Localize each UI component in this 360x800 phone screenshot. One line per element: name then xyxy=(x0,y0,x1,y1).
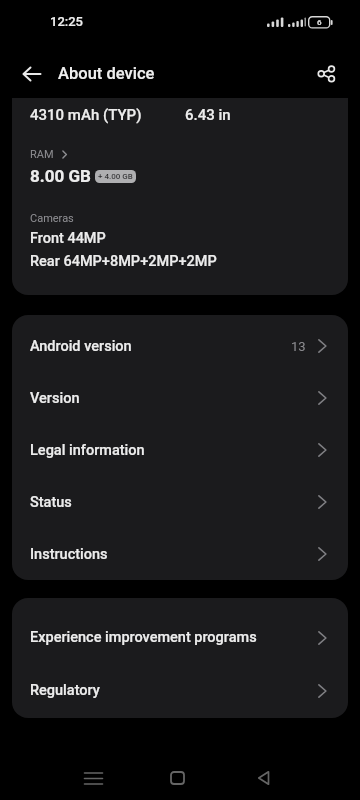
staticText: About device xyxy=(58,64,155,83)
button[interactable] xyxy=(308,58,348,86)
staticText: Experience improvement programs xyxy=(30,629,257,646)
staticText: Cameras xyxy=(30,212,74,225)
staticText: 13 xyxy=(291,339,306,354)
button[interactable]: Version xyxy=(12,372,348,424)
button[interactable] xyxy=(71,758,115,798)
staticText: 6 xyxy=(317,18,322,27)
staticText: 4310 mAh (TYP) xyxy=(30,106,142,124)
button[interactable]: Experience improvement programs xyxy=(12,611,348,664)
button[interactable]: RAM xyxy=(30,148,68,161)
button[interactable]: Legal information xyxy=(12,424,348,476)
staticText: + 4.00 GB xyxy=(98,172,133,181)
staticText: Version xyxy=(30,390,80,407)
staticText: Legal information xyxy=(30,442,145,459)
button[interactable] xyxy=(12,62,52,86)
button[interactable]: Regulatory xyxy=(12,664,348,717)
staticText: 6.43 in xyxy=(185,106,231,124)
staticText: RAM xyxy=(30,148,54,161)
button[interactable]: Instructions xyxy=(12,528,348,580)
staticText: Rear 64MP+8MP+2MP+2MP xyxy=(30,253,217,270)
button[interactable]: Android version xyxy=(12,320,348,372)
staticText: 8.00 GB xyxy=(30,166,91,186)
staticText: Status xyxy=(30,494,72,511)
staticText: 12:25 xyxy=(50,14,84,29)
staticText: Regulatory xyxy=(30,682,100,699)
button[interactable] xyxy=(155,758,199,798)
staticText: Front 44MP xyxy=(30,230,106,247)
staticText: Instructions xyxy=(30,546,108,563)
staticText: Android version xyxy=(30,338,132,355)
button[interactable]: Status xyxy=(12,476,348,528)
button[interactable] xyxy=(241,758,285,798)
